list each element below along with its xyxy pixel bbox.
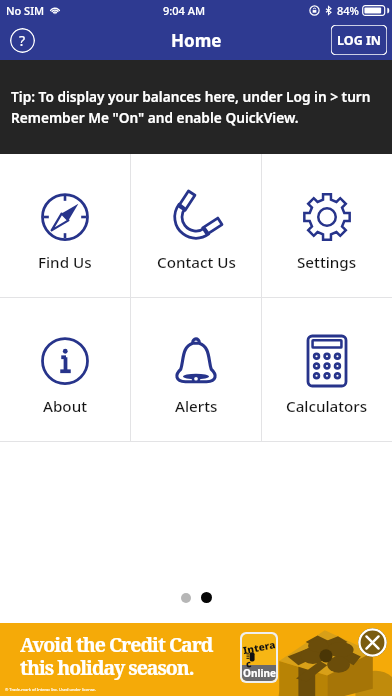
staticText: Tip: To display your balances here, unde… xyxy=(11,87,382,127)
staticText: Contact Us xyxy=(157,252,236,273)
staticText: No SIM xyxy=(6,3,45,18)
staticText: Settings xyxy=(297,252,357,273)
staticText: Avoid the Credit Card xyxy=(20,631,213,658)
staticText: Home xyxy=(171,29,222,52)
staticText: About xyxy=(43,396,87,417)
staticText: Alerts xyxy=(175,396,218,417)
button[interactable]: Page 1 xyxy=(181,593,191,603)
staticText: Find Us xyxy=(38,252,92,273)
staticText: 9:04 AM xyxy=(163,3,206,18)
staticText: this holiday season. xyxy=(20,654,194,681)
button[interactable]: Contact Us xyxy=(131,154,261,297)
button[interactable]: Page 2 xyxy=(201,592,212,603)
button[interactable]: Alerts xyxy=(131,298,261,441)
staticText: ? xyxy=(19,31,26,50)
staticText: © Trade-mark of Interac Inc. Used under … xyxy=(5,687,96,692)
button[interactable]: Close ad xyxy=(358,628,387,657)
staticText: LOG IN xyxy=(337,32,381,49)
staticText: 84% xyxy=(337,3,359,18)
button[interactable]: Avoid the Credit Card xyxy=(0,623,392,696)
button[interactable]: Find Us xyxy=(0,154,130,297)
button[interactable]: Help xyxy=(10,28,35,53)
button[interactable]: Calculators xyxy=(262,298,392,441)
button[interactable]: Settings xyxy=(262,154,392,297)
staticText: Online xyxy=(243,666,276,680)
button[interactable]: About xyxy=(0,298,130,441)
button[interactable]: LOG IN xyxy=(331,25,387,55)
staticText: Calculators xyxy=(286,396,368,417)
staticText: Interac xyxy=(242,637,278,671)
